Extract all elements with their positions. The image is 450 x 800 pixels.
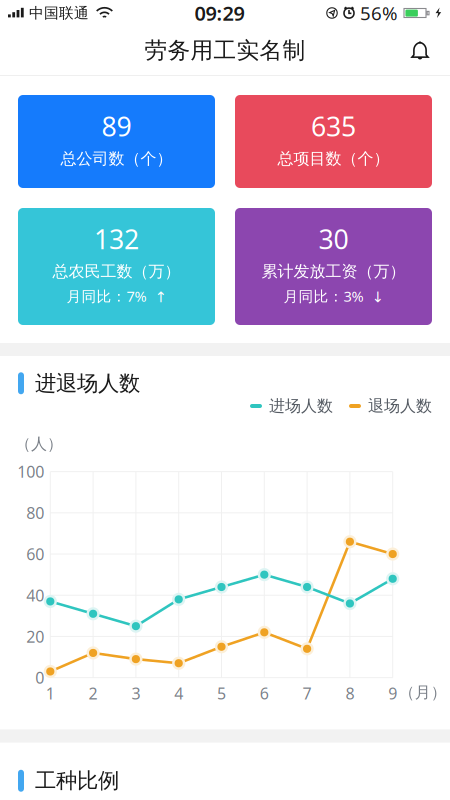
staticText: 635 <box>311 108 356 144</box>
button[interactable]: 132 <box>18 208 215 325</box>
staticText: 6 <box>260 683 269 704</box>
staticText: 20 <box>26 626 44 647</box>
staticText: 60 <box>26 543 44 565</box>
staticText: 8 <box>345 683 354 704</box>
staticText: 89 <box>101 108 131 144</box>
staticText: 1 <box>46 683 55 704</box>
staticText: 3 <box>131 683 140 704</box>
staticText: 0 <box>35 667 44 688</box>
staticText: （人） <box>15 434 63 454</box>
staticText: 09:29 <box>194 0 244 26</box>
button[interactable]: 通知 <box>398 28 442 72</box>
staticText: 总公司数（个） <box>60 149 172 169</box>
staticText: 40 <box>26 585 44 606</box>
staticText: 中国联通 <box>29 4 89 22</box>
button[interactable]: 635 <box>235 95 432 188</box>
staticText: 总农民工数（万） <box>52 262 180 281</box>
staticText: 132 <box>94 221 139 257</box>
staticText: 劳务用工实名制 <box>144 37 305 64</box>
staticText: 56% <box>360 1 398 25</box>
staticText: （月） <box>399 683 447 702</box>
staticText: 总项目数（个） <box>277 149 389 169</box>
button[interactable]: 89 <box>18 95 215 188</box>
staticText: 月同比：3% ↓ <box>283 286 383 306</box>
staticText: 月同比：7% ↑ <box>66 286 166 306</box>
staticText: 100 <box>17 461 44 482</box>
staticText: 5 <box>217 683 226 704</box>
staticText: 工种比例 <box>35 768 119 794</box>
staticText: 累计发放工资（万） <box>261 262 405 281</box>
staticText: 2 <box>89 683 98 704</box>
staticText: 9 <box>388 683 397 704</box>
staticText: 进场人数 <box>269 396 333 416</box>
staticText: 4 <box>174 683 183 704</box>
staticText: 80 <box>26 502 44 523</box>
staticText: 进退场人数 <box>35 370 140 396</box>
staticText: 退场人数 <box>368 396 432 416</box>
button[interactable]: 30 <box>235 208 432 325</box>
staticText: 30 <box>318 221 348 257</box>
staticText: 7 <box>303 683 312 704</box>
